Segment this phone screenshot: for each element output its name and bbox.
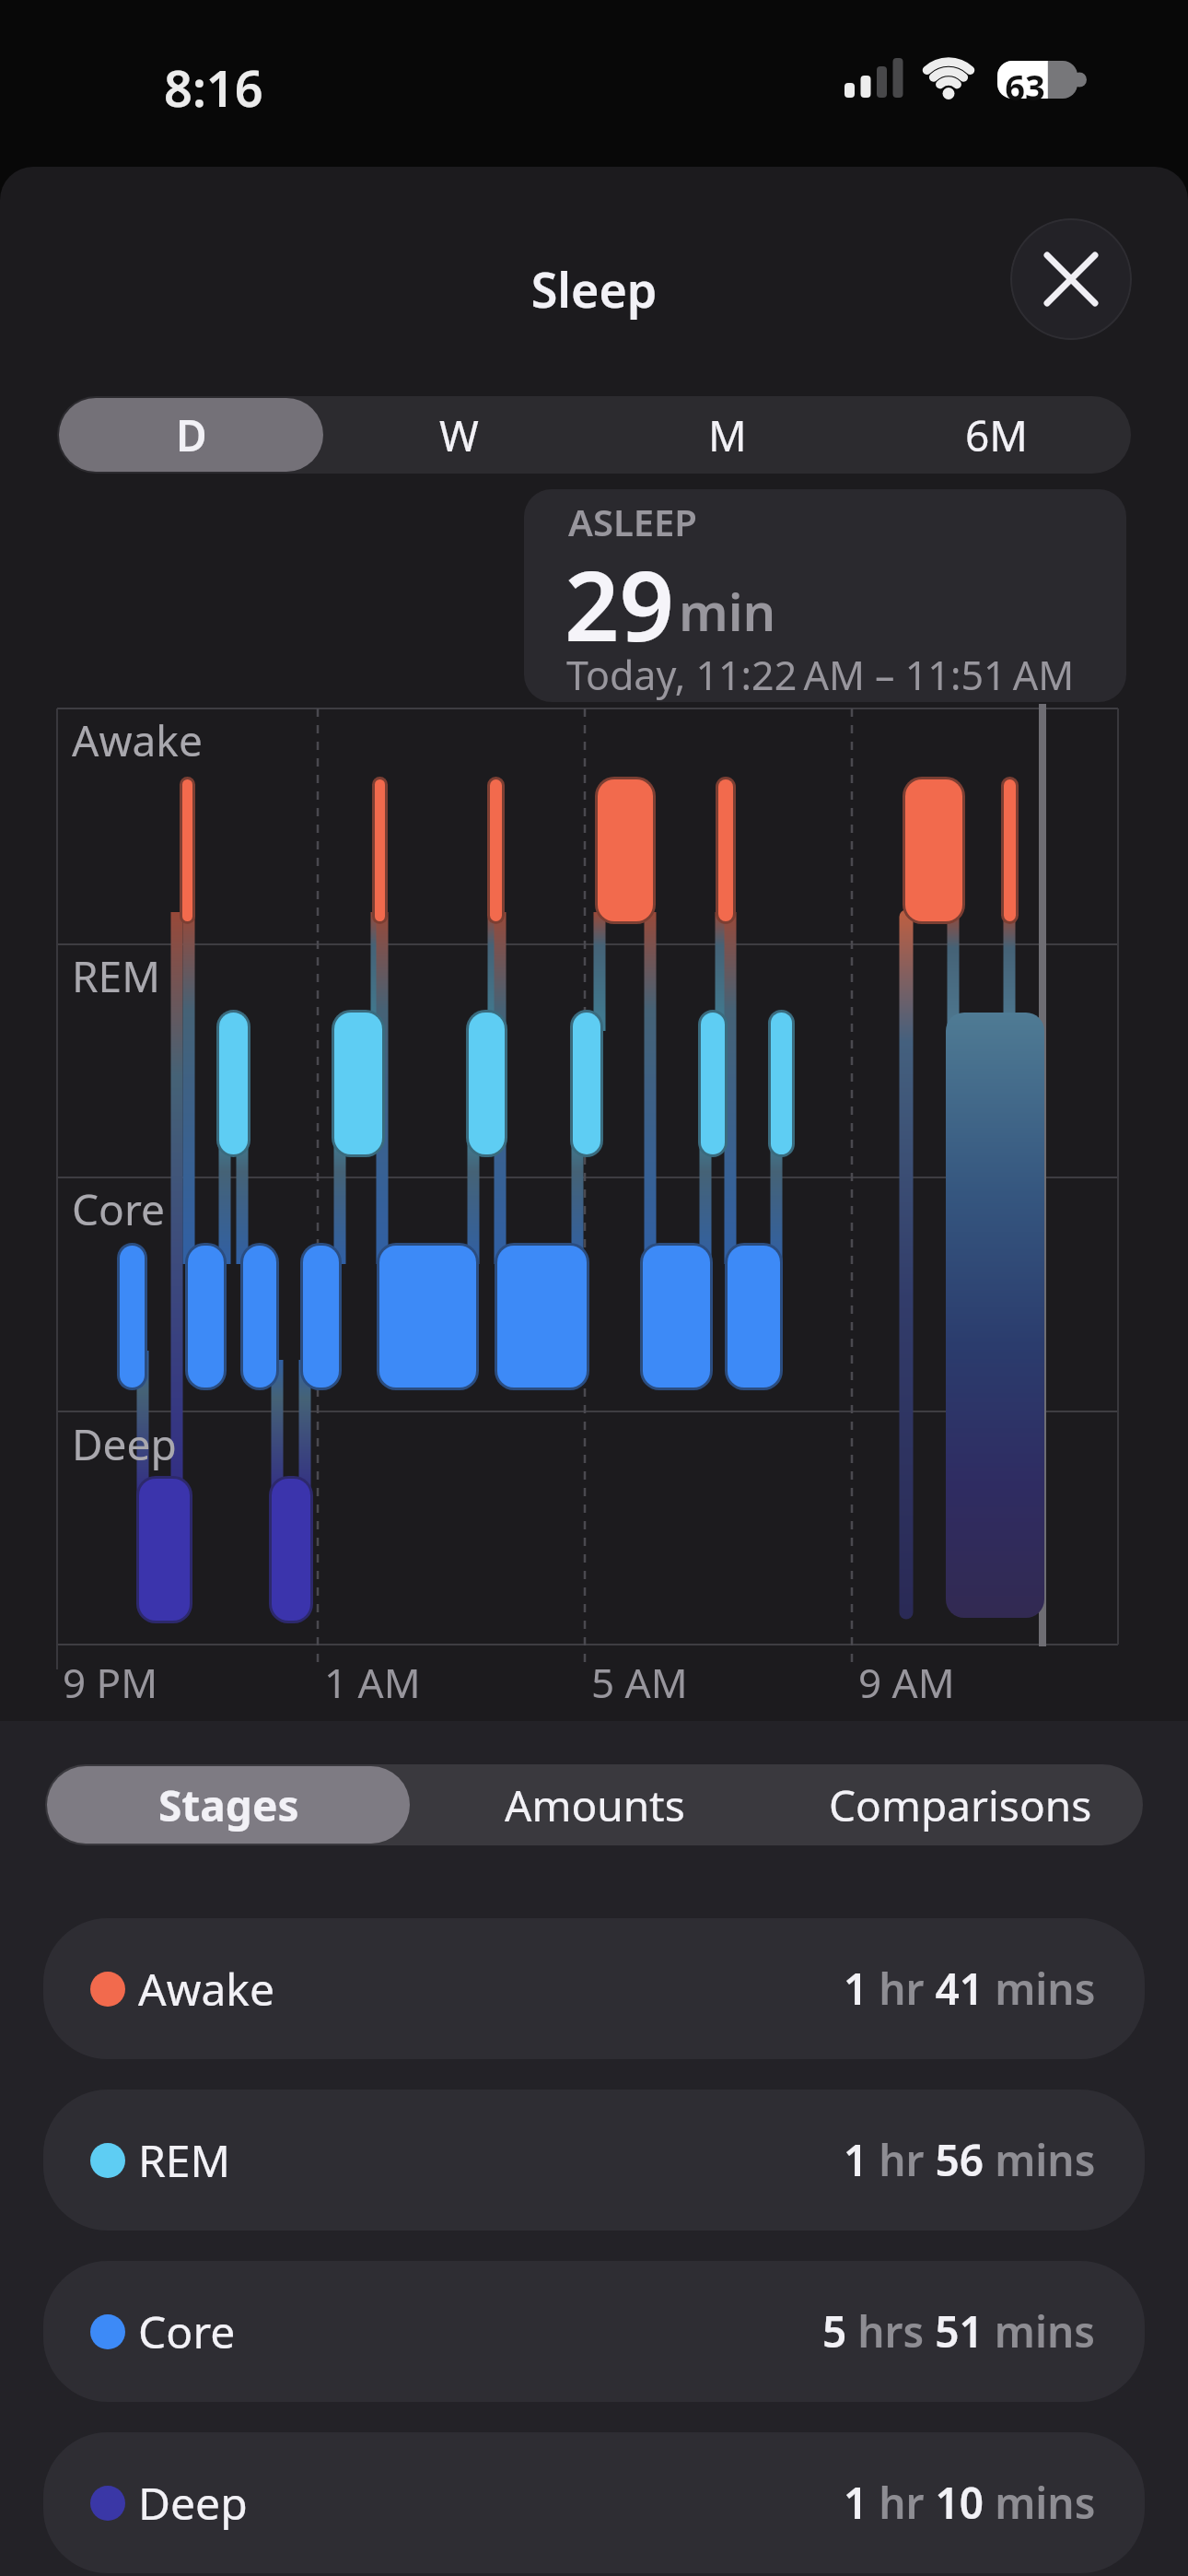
staticText: 1 hr 56 mins <box>844 2131 1096 2189</box>
staticText: Stages <box>158 1776 299 1834</box>
staticText: 1 hr 10 mins <box>844 2474 1096 2532</box>
staticText: Comparisons <box>829 1776 1092 1834</box>
staticText: 1 hr 41 mins <box>844 1960 1096 2018</box>
staticText: Deep <box>138 2473 248 2533</box>
staticText: W <box>439 406 479 464</box>
staticText: REM <box>138 2130 231 2190</box>
button[interactable]: Awake <box>43 1918 1145 2059</box>
staticText: M <box>708 406 747 464</box>
staticText: Today, 11:22 AM – 11:51 AM <box>566 648 1075 702</box>
staticText: 8:16 <box>164 53 263 122</box>
button[interactable]: Core <box>43 2261 1145 2402</box>
staticText: Core <box>72 1180 165 1238</box>
staticText: min <box>679 576 776 646</box>
staticText: 9 PM <box>63 1655 158 1710</box>
button[interactable]: D <box>59 398 323 472</box>
staticText: 5 AM <box>591 1655 688 1710</box>
button[interactable] <box>1010 218 1132 340</box>
staticText: Sleep <box>0 256 1188 322</box>
button[interactable]: Stages <box>47 1766 410 1844</box>
staticText: Awake <box>72 711 203 769</box>
staticText: Awake <box>138 1959 275 2019</box>
staticText: Deep <box>72 1415 177 1473</box>
staticText: 29 <box>565 539 674 670</box>
staticText: D <box>176 406 207 464</box>
button[interactable]: REM <box>43 2090 1145 2231</box>
button[interactable]: 6M <box>864 398 1129 472</box>
staticText: Amounts <box>505 1776 685 1834</box>
button[interactable]: W <box>327 398 591 472</box>
staticText: ASLEEP <box>568 497 697 546</box>
staticText: 1 AM <box>324 1655 421 1710</box>
button[interactable]: ASLEEP <box>524 489 1126 702</box>
staticText: Core <box>138 2301 236 2361</box>
button[interactable]: Deep <box>43 2432 1145 2573</box>
staticText: 63 <box>997 63 1053 111</box>
button[interactable]: M <box>595 398 860 472</box>
staticText: REM <box>72 947 160 1005</box>
staticText: 5 hrs 51 mins <box>822 2302 1096 2360</box>
staticText: 6M <box>965 406 1029 464</box>
button[interactable]: Comparisons <box>779 1766 1141 1844</box>
staticText: 9 AM <box>858 1655 955 1710</box>
button[interactable]: Amounts <box>413 1766 775 1844</box>
